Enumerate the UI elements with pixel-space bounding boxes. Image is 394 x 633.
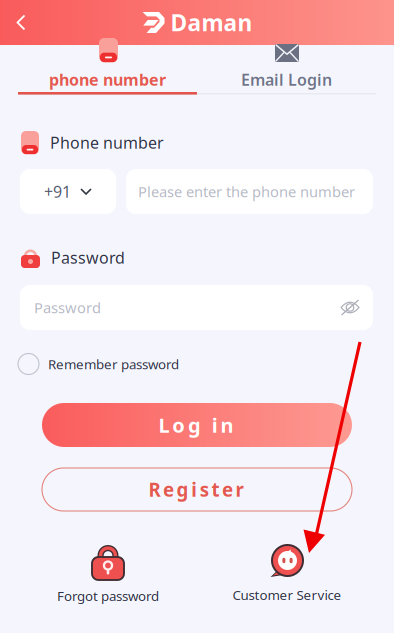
button[interactable]: phone number xyxy=(18,66,197,93)
staticText: +91 xyxy=(44,181,71,202)
staticText: Password xyxy=(34,298,101,317)
button[interactable]: +91 xyxy=(20,169,116,214)
button[interactable]: Register xyxy=(42,468,352,511)
button[interactable]: Email Login xyxy=(197,66,376,93)
staticText: phone number xyxy=(49,69,166,90)
staticText: Password xyxy=(51,247,125,268)
button[interactable]: Log in xyxy=(42,403,352,447)
staticText: Phone number xyxy=(50,132,164,153)
staticText: Register xyxy=(143,477,251,502)
staticText: Remember password xyxy=(48,355,179,373)
staticText: Please enter the phone number xyxy=(138,182,355,201)
button[interactable]: Remember password xyxy=(18,349,218,379)
button[interactable]: Customer Service xyxy=(212,544,362,604)
staticText: Email Login xyxy=(241,69,332,90)
staticText: Customer Service xyxy=(232,586,341,604)
staticText: Daman xyxy=(170,7,252,37)
button[interactable]: Please enter the phone number xyxy=(126,169,373,214)
staticText: Log in xyxy=(153,412,241,438)
button[interactable]: Forgot password xyxy=(33,544,183,605)
button[interactable]: Back xyxy=(0,0,42,45)
staticText: Forgot password xyxy=(57,587,159,605)
button[interactable]: Password xyxy=(20,285,373,330)
